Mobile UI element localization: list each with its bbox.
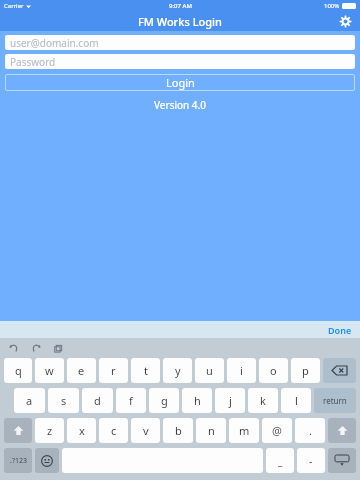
staticText: c	[111, 423, 117, 438]
button[interactable]: Undo	[8, 342, 20, 354]
button[interactable]: -	[297, 448, 325, 473]
button[interactable]: @	[262, 418, 292, 443]
staticText: .	[309, 423, 312, 438]
button[interactable]: p	[291, 358, 320, 383]
staticText: f	[129, 393, 133, 408]
staticText: z	[47, 423, 53, 438]
button[interactable]: q	[4, 358, 32, 383]
staticText: _	[278, 454, 283, 468]
button[interactable]: Shift	[328, 418, 356, 443]
staticText: a	[26, 393, 33, 408]
staticText: FM Works Login	[138, 14, 222, 29]
button[interactable]: l	[281, 388, 311, 413]
button[interactable]: j	[215, 388, 245, 413]
staticText: user@domain.com	[10, 36, 99, 50]
button[interactable]: Backspace	[323, 358, 356, 383]
button[interactable]: h	[182, 388, 212, 413]
staticText: 9:07 AM	[169, 2, 192, 10]
staticText: 100%	[324, 2, 340, 10]
button[interactable]: _	[266, 448, 294, 473]
staticText: h	[194, 393, 201, 408]
button[interactable]: g	[149, 388, 179, 413]
staticText: Done	[328, 324, 352, 336]
staticText: return	[323, 395, 347, 406]
staticText: .?123	[10, 456, 27, 466]
button[interactable]: k	[248, 388, 278, 413]
button[interactable]: .?123	[4, 448, 32, 473]
staticText: r	[111, 363, 116, 378]
button[interactable]: user@domain.com	[5, 35, 355, 50]
staticText: b	[175, 423, 182, 438]
button[interactable]: i	[227, 358, 256, 383]
staticText: p	[302, 363, 309, 378]
staticText: Login	[166, 75, 195, 90]
button[interactable]: Shift	[4, 418, 32, 443]
button[interactable]: Emoji	[35, 448, 59, 473]
button[interactable]: d	[82, 388, 113, 413]
staticText: @	[272, 423, 282, 438]
staticText: s	[61, 393, 67, 408]
button[interactable]: Password	[5, 54, 355, 69]
button[interactable]: x	[67, 418, 96, 443]
staticText: i	[240, 363, 243, 378]
staticText: -	[309, 454, 313, 468]
button[interactable]: Paste	[52, 342, 64, 354]
button[interactable]: e	[67, 358, 96, 383]
staticText: t	[144, 363, 148, 378]
button[interactable]: z	[35, 418, 64, 443]
staticText: q	[15, 363, 22, 378]
button[interactable]: Settings	[336, 12, 354, 30]
button[interactable]: m	[229, 418, 259, 443]
button[interactable]: c	[99, 418, 128, 443]
button[interactable]: Done	[320, 322, 360, 338]
staticText: g	[161, 393, 168, 408]
button[interactable]: f	[116, 388, 146, 413]
staticText: o	[270, 363, 277, 378]
button[interactable]: y	[163, 358, 192, 383]
staticText: j	[229, 393, 232, 408]
button[interactable]: .	[295, 418, 325, 443]
staticText: v	[143, 423, 149, 438]
button[interactable]: s	[48, 388, 79, 413]
button[interactable]: Login	[5, 74, 355, 91]
button[interactable]: r	[99, 358, 128, 383]
staticText: l	[295, 393, 298, 408]
button[interactable]: b	[163, 418, 193, 443]
staticText: m	[239, 423, 250, 438]
button[interactable]: u	[195, 358, 224, 383]
button[interactable]: return	[314, 388, 356, 413]
staticText: k	[260, 393, 266, 408]
staticText: n	[208, 423, 215, 438]
button[interactable]: n	[196, 418, 226, 443]
button[interactable]: v	[131, 418, 160, 443]
button[interactable]: Hide keyboard	[328, 448, 356, 473]
button[interactable]: o	[259, 358, 288, 383]
staticText: u	[206, 363, 213, 378]
staticText: x	[79, 423, 85, 438]
staticText: e	[78, 363, 85, 378]
staticText: Password	[10, 55, 56, 69]
staticText: Carrier	[4, 2, 24, 10]
staticText: d	[94, 393, 101, 408]
button[interactable]: a	[14, 388, 45, 413]
button[interactable]: Redo	[30, 342, 42, 354]
staticText: w	[45, 363, 54, 378]
button[interactable]: w	[35, 358, 64, 383]
button[interactable]: t	[131, 358, 160, 383]
staticText: y	[175, 363, 181, 378]
staticText: Version 4.0	[0, 98, 360, 112]
